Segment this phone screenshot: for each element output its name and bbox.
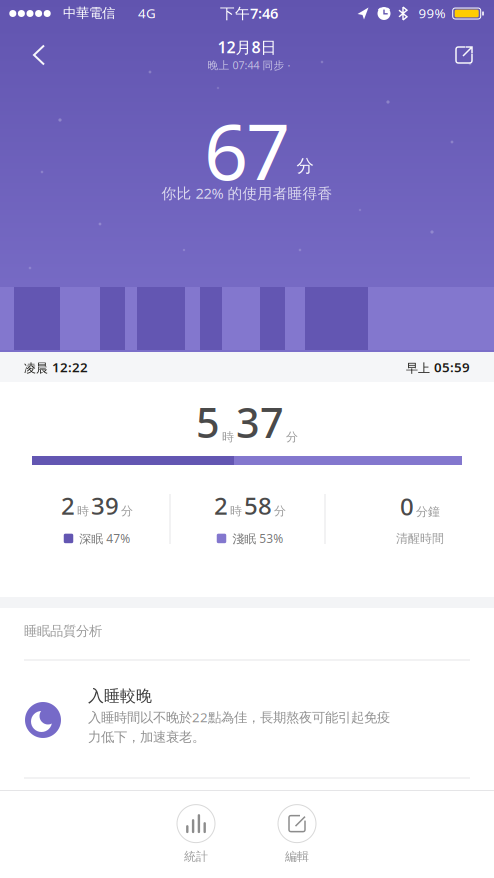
staticText: 時 xyxy=(77,504,89,518)
staticText: 2 xyxy=(61,490,75,521)
staticText: 12月8日 xyxy=(217,36,276,58)
staticText: 睡眠品質分析 xyxy=(24,623,102,639)
staticText: 你比 22% 的使用者睡得香 xyxy=(161,183,332,203)
staticText: 分 xyxy=(121,504,133,518)
staticText: 編輯 xyxy=(285,849,309,864)
staticText: 深眠 47% xyxy=(79,530,130,546)
staticText: 4G xyxy=(138,4,156,22)
staticText: 晚上 07:44 同步 · xyxy=(207,58,290,72)
staticText: 早上 05:59 xyxy=(406,358,470,376)
staticText: 入睡較晚 xyxy=(88,686,152,706)
staticText: 凌晨 12:22 xyxy=(24,358,88,376)
staticText: 淺眠 53% xyxy=(232,530,283,546)
staticText: 58 xyxy=(244,490,272,521)
staticText: 入睡時間以不晚於22點為佳，長期熬夜可能引起免疫 xyxy=(88,708,390,726)
staticText: 分 xyxy=(296,155,313,177)
staticText: 中華電信 xyxy=(63,5,115,21)
staticText: 0 xyxy=(400,490,414,522)
staticText: 67 xyxy=(204,99,290,201)
staticText: 時 xyxy=(222,430,234,444)
staticText: 力低下，加速衰老。 xyxy=(88,729,205,745)
staticText: 分 xyxy=(274,504,286,518)
staticText: 分鐘 xyxy=(416,504,440,519)
staticText: 39 xyxy=(91,490,119,521)
staticText: 5 xyxy=(196,395,220,449)
staticText: 時 xyxy=(230,504,242,518)
staticText: 99% xyxy=(418,4,445,22)
staticText: 分 xyxy=(286,430,298,444)
staticText: 統計 xyxy=(184,849,208,864)
staticText: 清醒時間 xyxy=(396,531,444,546)
staticText: 37 xyxy=(236,395,284,449)
staticText: 下午7:46 xyxy=(220,3,278,23)
staticText: 2 xyxy=(214,490,228,521)
